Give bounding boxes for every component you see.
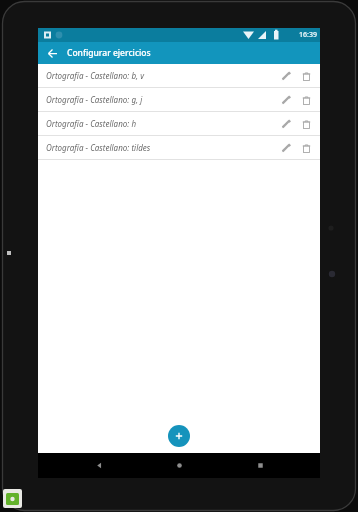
button[interactable]: Edit xyxy=(277,139,295,157)
button[interactable]: Edit xyxy=(277,91,295,109)
button[interactable]: Back xyxy=(79,453,119,478)
button[interactable]: Ortografía - Castellano: b, v xyxy=(38,64,320,87)
staticText: Ortografía - Castellano: h xyxy=(46,118,277,129)
staticText: Ortografía - Castellano: tildes xyxy=(46,142,277,153)
button[interactable]: Ortografía - Castellano: tildes xyxy=(38,136,320,159)
staticText: Configurar ejercicios xyxy=(67,47,151,59)
button[interactable]: Home xyxy=(159,453,199,478)
button[interactable]: Back xyxy=(43,44,61,62)
button[interactable]: Recents xyxy=(240,453,280,478)
button[interactable]: Delete xyxy=(297,139,315,157)
button[interactable]: Edit xyxy=(277,67,295,85)
button[interactable]: Ortografía - Castellano: h xyxy=(38,112,320,135)
staticText: Ortografía - Castellano: b, v xyxy=(46,70,277,81)
button[interactable]: Ortografía - Castellano: g, j xyxy=(38,88,320,111)
button[interactable]: Delete xyxy=(297,115,315,133)
button[interactable]: Add exercise xyxy=(168,425,190,447)
button[interactable]: Edit xyxy=(277,115,295,133)
staticText: Ortografía - Castellano: g, j xyxy=(46,94,277,105)
staticText: 16:39 xyxy=(299,30,317,40)
button[interactable]: Delete xyxy=(297,91,315,109)
button[interactable]: Delete xyxy=(297,67,315,85)
